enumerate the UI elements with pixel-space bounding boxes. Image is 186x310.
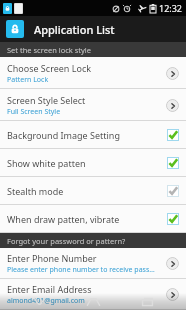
button[interactable]: Home [78, 293, 108, 310]
staticText: Enter Phone Number [7, 252, 97, 264]
staticText: almond401@gmail.com [7, 296, 85, 306]
button[interactable]: When draw patten, vibrate [0, 205, 186, 233]
staticText: Application List [34, 22, 115, 37]
button[interactable]: Enter Email Address [0, 279, 186, 310]
staticText: Stealth mode [7, 185, 64, 197]
button[interactable]: Enter Phone Number [0, 248, 186, 279]
staticText: Choose Screen Lock [7, 62, 92, 74]
button[interactable]: Choose Screen Lock [0, 57, 186, 89]
staticText: Enter Email Address [7, 283, 92, 295]
staticText: Show white patten [7, 157, 86, 169]
staticText: When draw patten, vibrate [7, 213, 120, 225]
staticText: Set the screen lock style [7, 45, 92, 55]
staticText: Forgot your password or pattern? [7, 236, 126, 246]
button[interactable]: Back [24, 293, 54, 310]
staticText: Pattern Lock [7, 75, 49, 85]
staticText: Screen Style Select [7, 94, 86, 106]
staticText: Full Screen Style [7, 107, 61, 117]
button[interactable]: Recent apps [132, 293, 162, 310]
button[interactable]: Stealth mode [0, 177, 186, 205]
button[interactable]: Screen Style Select [0, 89, 186, 121]
button[interactable]: Background Image Setting [0, 121, 186, 149]
staticText: Background Image Setting [7, 129, 120, 141]
staticText: 12:32 [159, 2, 183, 14]
button[interactable]: Show white patten [0, 149, 186, 177]
staticText: Please enter phone number to receive pas… [7, 265, 160, 275]
